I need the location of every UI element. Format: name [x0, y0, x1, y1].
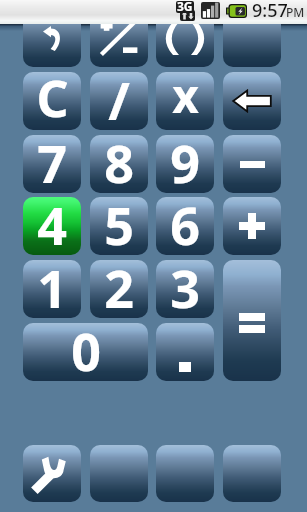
- staticText: 6: [170, 197, 200, 247]
- button[interactable]: 6: [156, 197, 214, 255]
- button[interactable]: 8: [90, 135, 148, 193]
- button[interactable]: Plus: [223, 197, 281, 255]
- button[interactable]: /: [90, 72, 148, 130]
- button[interactable]: x: [156, 72, 214, 130]
- button[interactable]: Decimal point: [156, 323, 214, 381]
- staticText: C: [36, 72, 69, 122]
- staticText: 8: [104, 135, 134, 185]
- staticText: 3: [170, 260, 200, 310]
- staticText: /: [108, 72, 130, 122]
- button[interactable]: Blank: [223, 9, 281, 67]
- staticText: x: [172, 72, 199, 122]
- button[interactable]: Equals: [223, 260, 281, 381]
- button[interactable]: 7: [23, 135, 81, 193]
- button[interactable]: 5: [90, 197, 148, 255]
- button[interactable]: Minus: [223, 135, 281, 193]
- button[interactable]: 9: [156, 135, 214, 193]
- staticText: 1: [37, 260, 67, 310]
- staticText: 5: [104, 197, 134, 247]
- staticText: 7: [37, 135, 67, 185]
- staticText: PM: [286, 4, 305, 20]
- button[interactable]: Menu item 4: [223, 445, 281, 502]
- staticText: 4: [37, 197, 67, 247]
- button[interactable]: Backspace: [223, 72, 281, 130]
- button[interactable]: Settings: [23, 445, 81, 502]
- button[interactable]: 3: [156, 260, 214, 318]
- button[interactable]: 2: [90, 260, 148, 318]
- button[interactable]: Plus minus: [90, 9, 148, 67]
- staticText: 3G: [177, 0, 193, 14]
- button[interactable]: Undo: [23, 9, 81, 67]
- button[interactable]: 1: [23, 260, 81, 318]
- staticText: 2: [104, 260, 134, 310]
- button[interactable]: 0: [23, 323, 148, 381]
- staticText: 9: [170, 135, 200, 185]
- staticText: 9:57: [252, 0, 288, 22]
- button[interactable]: Menu item 2: [90, 445, 148, 502]
- button[interactable]: Menu item 3: [156, 445, 214, 502]
- button[interactable]: Parentheses: [156, 9, 214, 67]
- button[interactable]: C: [23, 72, 81, 130]
- button[interactable]: 4: [23, 197, 81, 255]
- staticText: 0: [71, 323, 101, 373]
